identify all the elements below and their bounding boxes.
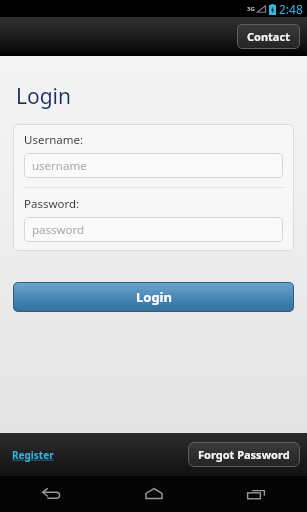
button[interactable]: Login (13, 282, 294, 312)
button[interactable]: username (24, 153, 283, 178)
staticText: Forgot Password (198, 447, 290, 462)
staticText: Contact (247, 29, 290, 44)
staticText: password (32, 222, 85, 238)
button[interactable]: password (24, 217, 283, 242)
staticText: Register (12, 448, 54, 462)
button[interactable]: Contact (237, 24, 300, 49)
staticText: Login (16, 82, 72, 111)
button[interactable]: Register (8, 444, 58, 466)
staticText: 3G (247, 5, 255, 13)
button[interactable]: Recent apps (234, 478, 278, 510)
staticText: 2:48 (279, 1, 303, 17)
staticText: username (32, 158, 87, 174)
button[interactable]: Home (132, 478, 176, 510)
staticText: Username: (24, 132, 84, 148)
button[interactable]: Forgot Password (188, 442, 300, 467)
staticText: Password: (24, 196, 80, 212)
button[interactable]: Back (29, 478, 73, 510)
staticText: Login (136, 288, 172, 306)
